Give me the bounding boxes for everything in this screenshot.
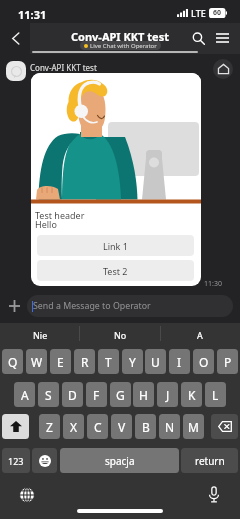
staticText: Send a Message to Operator	[33, 300, 151, 312]
staticText: W	[31, 354, 43, 370]
staticText: A	[21, 387, 29, 403]
button[interactable]: L	[205, 382, 226, 407]
button[interactable]: Q	[2, 349, 23, 374]
staticText: C	[94, 419, 102, 435]
staticText: 60	[213, 8, 222, 18]
button[interactable]: H	[133, 382, 154, 407]
button[interactable]: K	[181, 382, 202, 407]
button[interactable]: C	[87, 414, 108, 439]
staticText: L	[212, 387, 219, 403]
button[interactable]: Nie	[0, 323, 80, 346]
button[interactable]: I	[169, 349, 190, 374]
staticText: Q	[8, 354, 18, 370]
staticText: Test header	[35, 209, 85, 221]
button[interactable]: Voice input	[204, 485, 224, 505]
button[interactable]: Send a Message to Operator	[27, 295, 233, 317]
button[interactable]: M	[183, 414, 204, 439]
staticText: E	[57, 354, 64, 370]
button[interactable]: Back	[4, 23, 28, 53]
staticText: T	[105, 354, 112, 370]
button[interactable]: W	[26, 349, 47, 374]
staticText: Conv-API KKT test	[30, 62, 97, 73]
button[interactable]: Add attachment	[4, 295, 25, 316]
button[interactable]: Emoji	[32, 448, 57, 473]
button[interactable]: spacja	[60, 448, 179, 473]
staticText: M	[188, 419, 199, 435]
button[interactable]: Change keyboard language	[17, 485, 37, 505]
staticText: U	[151, 354, 160, 370]
button[interactable]: Home	[213, 59, 233, 79]
button[interactable]: E	[50, 349, 71, 374]
staticText: V	[118, 419, 126, 435]
staticText: spacja	[105, 454, 135, 468]
button[interactable]: A	[14, 382, 35, 407]
button[interactable]: Shift	[2, 414, 29, 439]
button[interactable]: Test 2	[37, 260, 194, 281]
staticText: J	[166, 387, 170, 403]
button[interactable]: Link 1	[37, 235, 194, 256]
staticText: Y	[129, 354, 136, 370]
staticText: Hello	[35, 218, 57, 230]
staticText: N	[165, 419, 175, 435]
staticText: K	[188, 387, 196, 403]
staticText: Conv-API KKT test	[71, 29, 169, 41]
button[interactable]: U	[145, 349, 166, 374]
staticText: LTE	[191, 7, 206, 19]
button[interactable]: Menu	[209, 23, 235, 53]
staticText: I	[177, 354, 182, 370]
button[interactable]: J	[157, 382, 178, 407]
button[interactable]: N	[159, 414, 180, 439]
staticText: Live Chat with Operator	[90, 42, 157, 50]
button[interactable]: S	[38, 382, 59, 407]
staticText: 123	[8, 455, 24, 467]
button[interactable]: F	[86, 382, 107, 407]
button[interactable]: 123	[2, 448, 30, 473]
button[interactable]: B	[135, 414, 156, 439]
staticText: R	[81, 354, 89, 370]
button[interactable]: G	[110, 382, 131, 407]
staticText: Z	[46, 419, 53, 435]
button[interactable]: Y	[122, 349, 143, 374]
staticText: No	[114, 329, 127, 341]
staticText: G	[116, 387, 125, 403]
button[interactable]: T	[98, 349, 119, 374]
button[interactable]: P	[217, 349, 238, 374]
button[interactable]: X	[63, 414, 84, 439]
staticText: Nie	[33, 329, 48, 341]
button[interactable]: D	[62, 382, 83, 407]
button[interactable]: R	[74, 349, 95, 374]
button[interactable]: return	[181, 448, 238, 473]
staticText: Test 2	[103, 265, 128, 277]
button[interactable]: V	[111, 414, 132, 439]
button[interactable]: Backspace	[211, 414, 238, 439]
button[interactable]: Z	[39, 414, 60, 439]
staticText: Link 1	[103, 240, 128, 252]
staticText: H	[139, 387, 148, 403]
staticText: S	[45, 387, 52, 403]
staticText: 11:30	[204, 279, 222, 289]
staticText: return	[195, 454, 225, 468]
staticText: F	[93, 387, 100, 403]
staticText: O	[199, 354, 209, 370]
button[interactable]: No	[80, 323, 160, 346]
staticText: B	[142, 419, 150, 435]
button[interactable]: A	[160, 323, 240, 346]
staticText: P	[224, 354, 232, 370]
staticText: 11:31	[18, 7, 47, 22]
staticText: D	[68, 387, 77, 403]
staticText: A	[197, 329, 203, 341]
button[interactable]: O	[193, 349, 214, 374]
staticText: X	[70, 419, 78, 435]
button[interactable]: Search	[187, 23, 209, 53]
